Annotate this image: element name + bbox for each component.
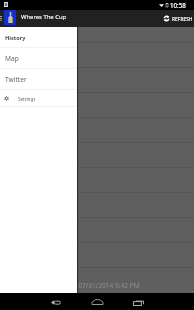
button[interactable]: History xyxy=(0,27,77,48)
staticText: Settings xyxy=(18,96,36,102)
button[interactable]: Settings xyxy=(0,90,77,107)
staticText: 10:58 xyxy=(170,1,186,9)
staticText: Map xyxy=(5,54,19,63)
button[interactable]: Home xyxy=(89,294,105,310)
staticText: Last updated 07/31/2014 9:42 PM xyxy=(36,281,140,290)
staticText: Twitter xyxy=(5,75,27,84)
staticText: History xyxy=(5,34,26,42)
staticText: REFRESH xyxy=(172,16,193,22)
button[interactable]: Recent apps xyxy=(130,294,146,310)
button[interactable]: REFRESH xyxy=(163,10,193,27)
button[interactable]: Open navigation drawer xyxy=(0,10,4,27)
staticText: Wheres The Cup xyxy=(21,13,67,21)
button[interactable]: Back xyxy=(48,294,64,310)
button[interactable]: Map xyxy=(0,48,77,69)
button[interactable]: Twitter xyxy=(0,69,77,90)
